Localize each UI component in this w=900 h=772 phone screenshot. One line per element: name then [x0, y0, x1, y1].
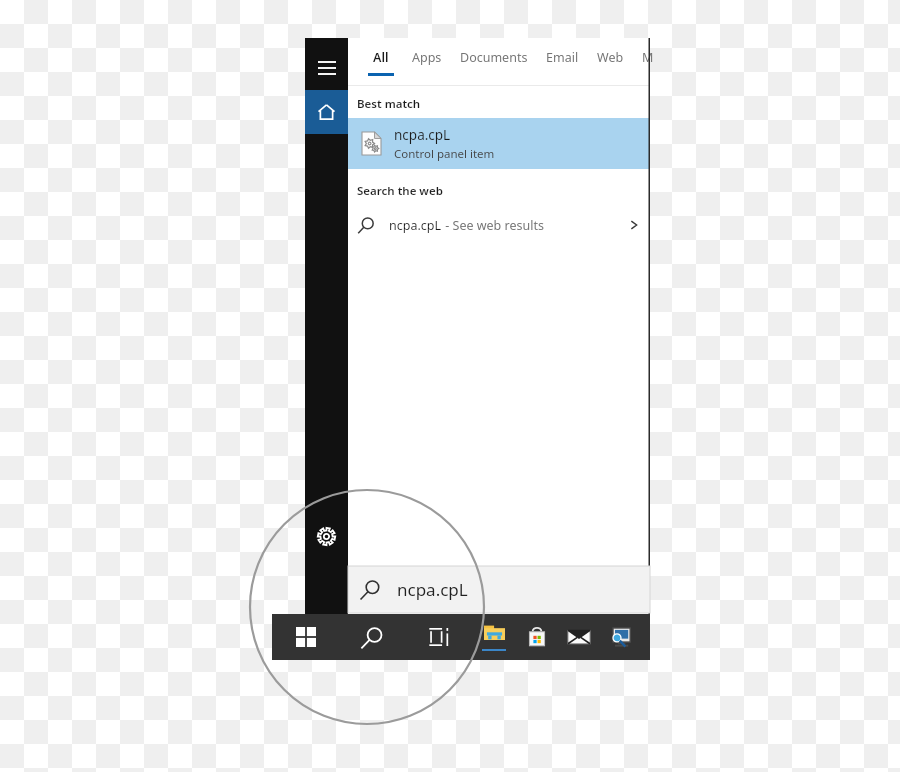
staticText: Web	[597, 49, 624, 66]
staticText: Apps	[412, 49, 442, 66]
staticText: Documents	[460, 49, 528, 66]
button[interactable]: All	[368, 38, 394, 86]
button[interactable]: ncpa.cpL	[348, 205, 650, 245]
button[interactable]: ncpa.cpL	[348, 118, 650, 169]
staticText: ncpa.cpL	[394, 126, 451, 144]
button[interactable]: Task View	[406, 614, 472, 660]
button[interactable]: ncpa.cpL	[348, 566, 650, 613]
button[interactable]: Email	[546, 38, 579, 86]
button[interactable]: File Explorer	[472, 614, 516, 660]
staticText: - See web results	[442, 217, 544, 234]
staticText: Email	[546, 49, 579, 66]
staticText: Best match	[357, 96, 421, 112]
button[interactable]: Menu	[305, 44, 348, 92]
staticText: M	[642, 49, 650, 66]
staticText: ncpa.cpL	[397, 578, 468, 601]
button[interactable]: Start	[272, 614, 340, 660]
button[interactable]: Documents	[460, 38, 528, 86]
staticText: Search the web	[357, 183, 443, 199]
button[interactable]: Web	[597, 38, 624, 86]
button[interactable]: Microsoft Store	[516, 614, 558, 660]
button[interactable]: Mail	[558, 614, 600, 660]
button[interactable]: Apps	[412, 38, 442, 86]
staticText: ncpa.cpL	[389, 217, 442, 234]
button[interactable]: Home	[305, 90, 348, 134]
button[interactable]: M	[642, 38, 650, 86]
staticText: All	[373, 49, 389, 66]
button[interactable]: Settings	[305, 514, 348, 558]
button[interactable]: App	[600, 614, 642, 660]
staticText: Control panel item	[394, 146, 495, 162]
button[interactable]: Search	[340, 614, 406, 660]
